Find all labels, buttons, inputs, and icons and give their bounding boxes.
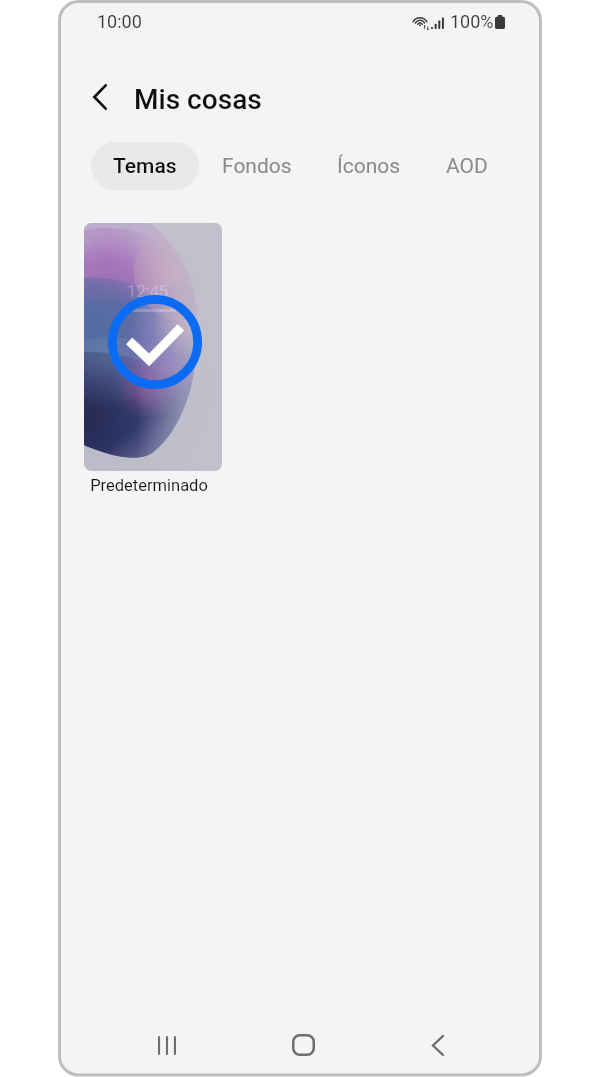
staticText: Íconos: [337, 154, 401, 179]
button[interactable]: Fondos: [203, 142, 311, 190]
staticText: 12:45: [127, 281, 169, 301]
staticText: Temas: [113, 154, 177, 179]
staticText: 100%: [450, 11, 494, 32]
button[interactable]: Home: [263, 1017, 343, 1073]
button[interactable]: Back: [76, 73, 124, 121]
staticText: 10:00: [97, 11, 142, 32]
staticText: Fondos: [222, 154, 292, 179]
button[interactable]: Recent apps: [127, 1017, 207, 1073]
button[interactable]: Íconos: [315, 142, 423, 190]
staticText: Mis cosas: [134, 83, 262, 116]
staticText: AOD: [446, 154, 488, 179]
staticText: Predeterminado: [90, 476, 208, 495]
button[interactable]: AOD: [413, 142, 521, 190]
button[interactable]: Temas: [91, 142, 199, 190]
button[interactable]: 12:45: [84, 223, 222, 495]
button[interactable]: Back: [398, 1017, 478, 1073]
